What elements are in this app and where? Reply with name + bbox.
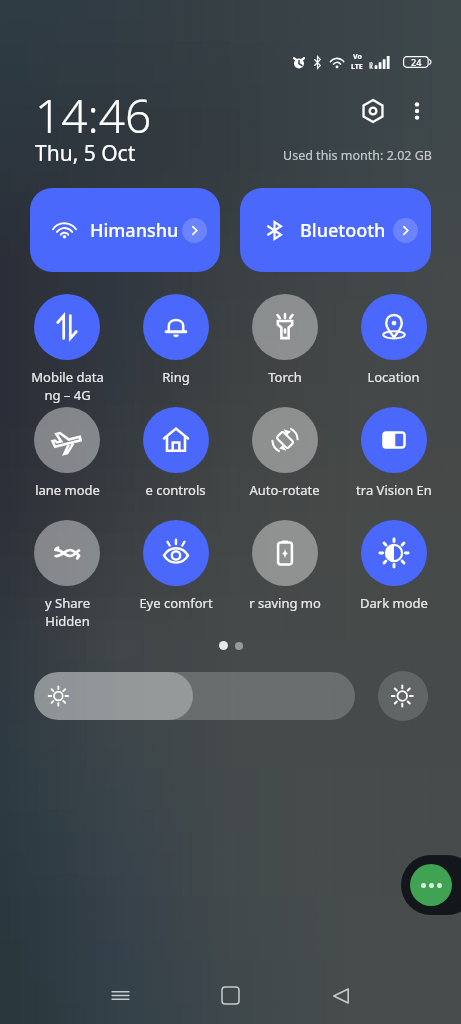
staticText: 14:46: [35, 84, 152, 147]
button[interactable]: tra Vision En: [339, 407, 448, 520]
button[interactable]: r saving mo: [230, 520, 339, 633]
button[interactable]: lane mode: [13, 407, 121, 520]
staticText: tra Vision En: [356, 481, 432, 499]
staticText: y Share: [45, 594, 90, 612]
button[interactable]: y Share: [13, 520, 121, 633]
staticText: Ring: [162, 368, 190, 386]
staticText: Eye comfort: [139, 594, 213, 612]
button[interactable]: Chat bubble: [401, 855, 461, 915]
staticText: Auto-rotate: [249, 481, 320, 499]
button[interactable]: Back: [313, 968, 368, 1023]
staticText: 24: [411, 56, 422, 68]
staticText: Dark mode: [360, 594, 428, 612]
button[interactable]: Eye comfort: [121, 520, 230, 633]
button[interactable]: Ring: [121, 294, 230, 407]
button[interactable]: Dark mode: [339, 520, 448, 633]
staticText: Torch: [268, 368, 302, 386]
button[interactable]: Settings: [351, 89, 395, 133]
button[interactable]: Bluetooth: [240, 188, 431, 272]
button[interactable]: Auto brightness: [378, 671, 428, 721]
staticText: LTE: [351, 62, 363, 72]
button[interactable]: Auto-rotate: [230, 407, 339, 520]
staticText: Location: [367, 368, 420, 386]
button[interactable]: Himanshu: [30, 188, 220, 272]
button[interactable]: More options: [395, 89, 439, 133]
staticText: Himanshu: [90, 218, 179, 243]
button[interactable]: Location: [339, 294, 448, 407]
staticText: r saving mo: [249, 594, 321, 612]
staticText: Hidden: [45, 612, 90, 630]
staticText: Thu, 5 Oct: [35, 139, 136, 168]
button[interactable]: Torch: [230, 294, 339, 407]
staticText: Used this month: 2.02 GB: [283, 147, 432, 164]
staticText: e controls: [145, 481, 206, 499]
staticText: Mobile data: [31, 368, 104, 386]
button[interactable]: Recents: [93, 968, 148, 1023]
staticText: Bluetooth: [300, 218, 386, 243]
staticText: Vo: [353, 52, 362, 62]
button[interactable]: Home: [203, 968, 258, 1023]
button[interactable]: [34, 672, 355, 720]
button[interactable]: e controls: [121, 407, 230, 520]
staticText: lane mode: [35, 481, 100, 499]
button[interactable]: Mobile data: [13, 294, 121, 407]
staticText: ng – 4G: [44, 386, 91, 404]
